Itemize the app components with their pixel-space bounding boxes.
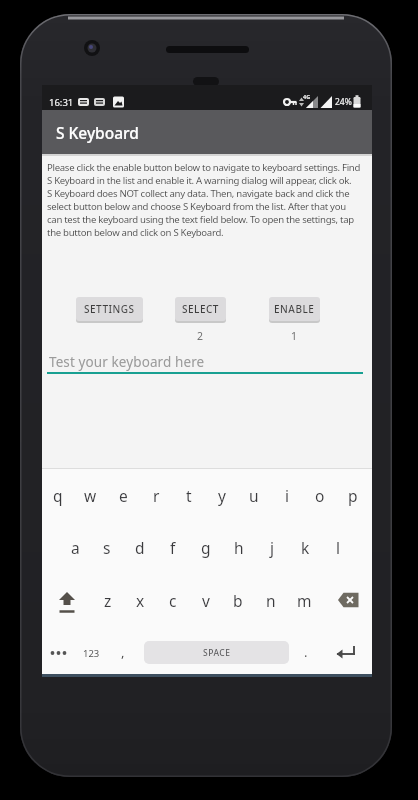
button[interactable]: w [74,471,106,519]
staticText: b [233,590,243,611]
button[interactable]: SELECT [175,297,226,321]
staticText: select button below and choose S Keyboar… [47,200,346,213]
staticText: t [186,485,192,506]
staticText: v [202,590,210,611]
staticText: 1 [291,329,298,343]
staticText: p [348,485,358,506]
button[interactable]: ENABLE [269,297,320,321]
staticText: a [71,537,80,558]
staticText: o [315,485,325,506]
button[interactable]: g [190,523,222,571]
staticText: u [249,485,259,506]
button[interactable]: h [223,523,255,571]
button[interactable]: l [322,523,354,571]
staticText: h [234,537,244,558]
button[interactable]: SPACE [144,641,289,664]
staticText: 2 [197,329,204,343]
staticText: SPACE [203,647,231,659]
staticText: q [53,485,63,506]
staticText: d [135,537,145,558]
button[interactable]: k [289,523,321,571]
button[interactable]: c [157,576,189,624]
button[interactable]: t [173,471,205,519]
staticText: the button below and click on S Keyboard… [47,226,224,239]
staticText: w [84,485,97,506]
button[interactable]: m [288,576,320,624]
staticText: m [297,590,312,611]
button[interactable]: j [256,523,288,571]
staticText: . [304,643,308,661]
staticText: i [285,485,289,506]
staticText: e [119,485,128,506]
button[interactable]: o [304,471,336,519]
staticText: n [266,590,276,611]
button[interactable]: z [92,576,124,624]
staticText: c [169,590,177,611]
button[interactable]: b [222,576,254,624]
button[interactable]: u [238,471,270,519]
button[interactable]: r [140,471,172,519]
button[interactable]: Test your keyboard here [47,351,363,377]
staticText: SELECT [182,302,219,316]
button[interactable]: a [59,523,91,571]
staticText: 123 [83,647,100,660]
staticText: Please click the enable button below to … [47,161,361,174]
staticText: z [104,590,112,611]
staticText: SETTINGS [84,302,135,316]
button[interactable]: y [206,471,238,519]
staticText: , [121,643,125,661]
button[interactable]: n [255,576,287,624]
staticText: k [301,537,310,558]
staticText: j [270,537,274,558]
button[interactable]: v [190,576,222,624]
staticText: f [170,537,176,558]
button[interactable]: s [91,523,123,571]
button[interactable]: SETTINGS [76,297,143,321]
button[interactable]: f [157,523,189,571]
staticText: ENABLE [274,302,315,316]
staticText: g [201,537,211,558]
staticText: s [103,537,111,558]
button[interactable]: p [337,471,369,519]
staticText: r [153,485,160,506]
button[interactable]: i [271,471,303,519]
staticText: 24% [335,96,352,108]
staticText: S Keyboard in the list and enable it. A … [47,174,352,187]
staticText: can test the keyboard using the text fie… [47,213,354,226]
staticText: S Keyboard [56,122,139,143]
staticText: Test your keyboard here [49,353,205,371]
staticText: 4G [303,93,311,100]
button[interactable]: x [124,576,156,624]
staticText: S Keyboard does NOT collect any data. Th… [47,187,350,200]
staticText: l [336,537,340,558]
button[interactable]: e [107,471,139,519]
staticText: y [218,485,226,506]
staticText: x [136,590,145,611]
staticText: 16:31 [49,96,74,109]
button[interactable]: d [124,523,156,571]
button[interactable]: q [42,471,74,519]
